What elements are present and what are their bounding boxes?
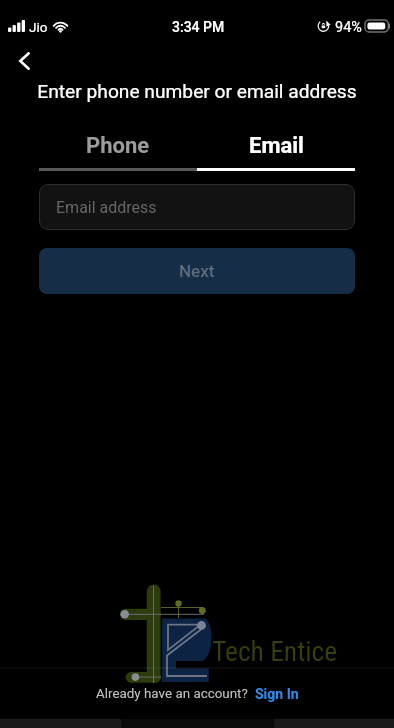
staticText: Already have an account? — [96, 686, 248, 702]
button[interactable]: Already have an account? — [0, 681, 394, 706]
staticText: Jio — [29, 19, 48, 35]
staticText: 94% — [335, 19, 362, 36]
staticText: Next — [179, 261, 215, 281]
button[interactable]: Next — [39, 248, 355, 294]
button[interactable]: Email address — [39, 184, 355, 230]
staticText: Email address — [56, 198, 157, 217]
button[interactable]: Email — [197, 132, 355, 160]
staticText: Phone — [86, 133, 150, 159]
staticText: Sign In — [255, 686, 299, 702]
staticText: Enter phone number or email address — [0, 80, 394, 103]
staticText: 3:34 PM — [172, 19, 225, 35]
button[interactable]: Phone — [39, 132, 197, 160]
staticText: Tech Entice — [212, 635, 338, 667]
staticText: Email — [249, 133, 304, 159]
button[interactable]: Back — [3, 42, 43, 78]
